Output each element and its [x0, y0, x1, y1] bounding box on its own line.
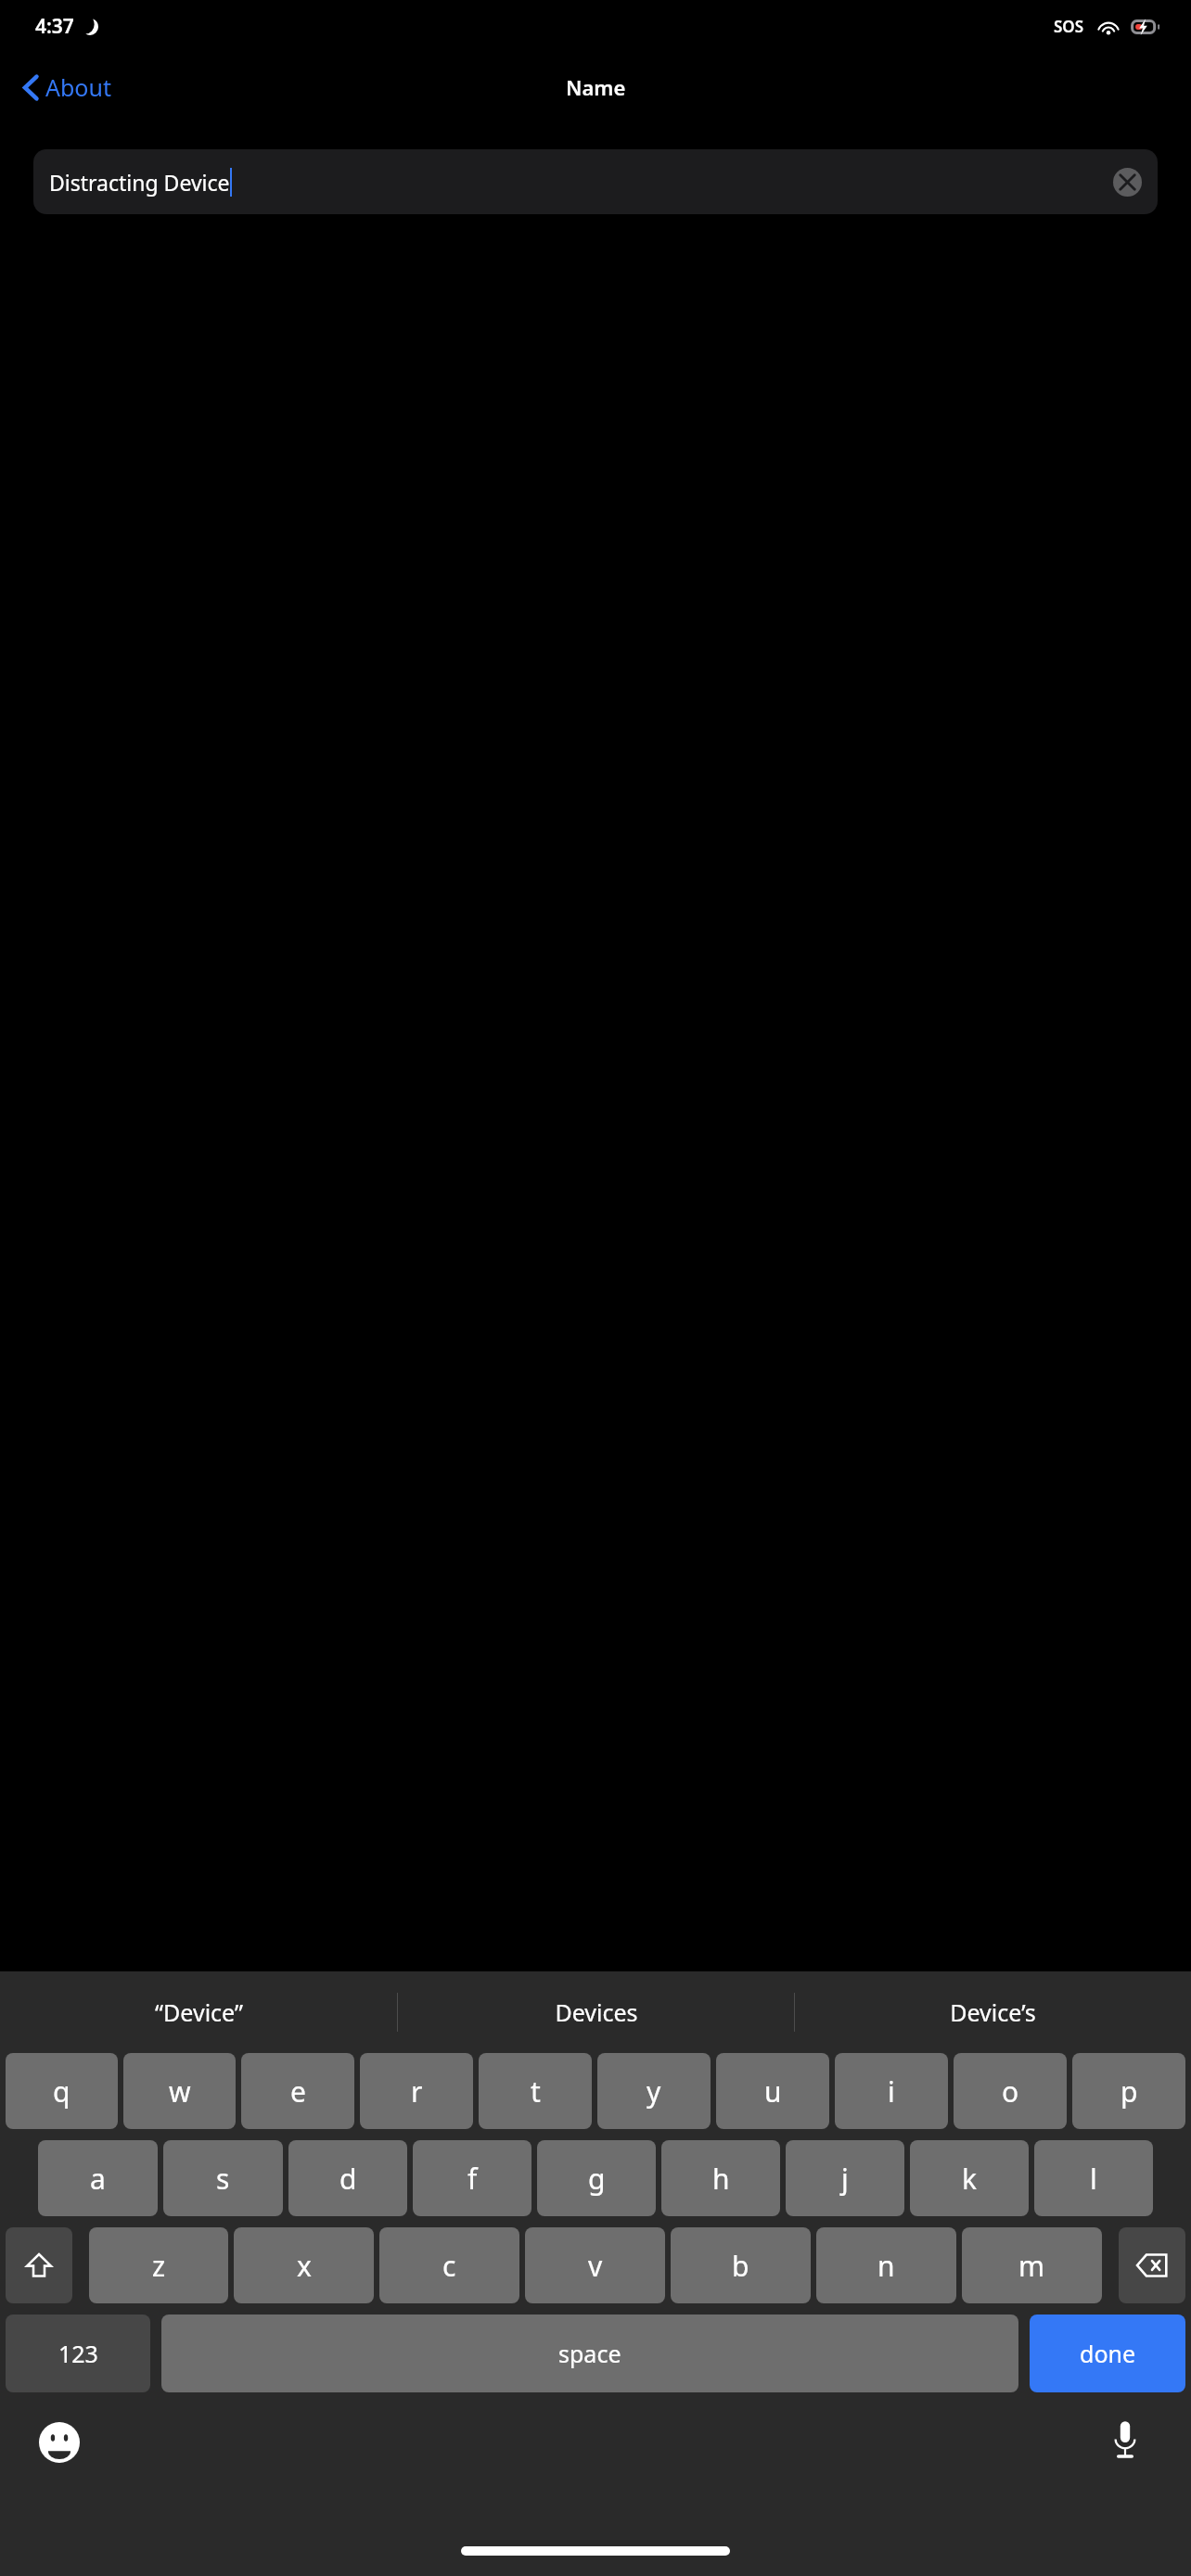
staticText: i: [888, 2072, 895, 2111]
button[interactable]: Dictation: [1104, 2418, 1146, 2461]
button[interactable]: v: [525, 2227, 665, 2303]
button[interactable]: w: [123, 2053, 236, 2129]
button[interactable]: space: [161, 2315, 1018, 2392]
staticText: Distracting Device: [49, 168, 230, 197]
staticText: v: [588, 2247, 603, 2285]
staticText: 4:37: [35, 13, 74, 40]
staticText: About: [45, 71, 111, 103]
button[interactable]: o: [954, 2053, 1067, 2129]
staticText: h: [712, 2160, 730, 2198]
button[interactable]: x: [234, 2227, 374, 2303]
button[interactable]: Devices: [398, 1971, 794, 2053]
staticText: n: [877, 2247, 895, 2285]
staticText: b: [732, 2247, 749, 2285]
staticText: s: [216, 2160, 230, 2198]
staticText: f: [467, 2160, 478, 2198]
button[interactable]: h: [661, 2140, 780, 2216]
staticText: d: [339, 2160, 357, 2198]
staticText: 123: [58, 2338, 98, 2369]
staticText: u: [764, 2072, 782, 2111]
staticText: g: [588, 2160, 606, 2198]
staticText: t: [531, 2072, 541, 2111]
button[interactable]: d: [288, 2140, 407, 2216]
button[interactable]: a: [38, 2140, 158, 2216]
staticText: l: [1090, 2160, 1097, 2198]
staticText: “Device”: [155, 1996, 243, 2028]
staticText: e: [290, 2072, 306, 2111]
button[interactable]: j: [786, 2140, 904, 2216]
button[interactable]: done: [1030, 2315, 1185, 2392]
staticText: x: [297, 2247, 312, 2285]
staticText: k: [962, 2160, 978, 2198]
staticText: Devices: [555, 1996, 638, 2028]
staticText: o: [1002, 2072, 1019, 2111]
button[interactable]: p: [1072, 2053, 1185, 2129]
staticText: Name: [566, 73, 626, 101]
button[interactable]: e: [241, 2053, 354, 2129]
button[interactable]: y: [597, 2053, 711, 2129]
staticText: c: [442, 2247, 456, 2285]
button[interactable]: z: [89, 2227, 228, 2303]
button[interactable]: q: [6, 2053, 118, 2129]
staticText: Device’s: [950, 1996, 1036, 2028]
button[interactable]: l: [1034, 2140, 1153, 2216]
staticText: done: [1080, 2338, 1136, 2369]
button[interactable]: c: [379, 2227, 519, 2303]
button[interactable]: Emoji keyboard: [37, 2420, 82, 2465]
staticText: a: [90, 2160, 106, 2198]
button[interactable]: f: [413, 2140, 531, 2216]
button[interactable]: n: [816, 2227, 956, 2303]
button[interactable]: g: [537, 2140, 656, 2216]
button[interactable]: r: [360, 2053, 473, 2129]
staticText: p: [1121, 2072, 1138, 2111]
button[interactable]: s: [163, 2140, 283, 2216]
button[interactable]: b: [671, 2227, 811, 2303]
staticText: space: [558, 2338, 621, 2369]
button[interactable]: Clear text: [1113, 168, 1142, 197]
button[interactable]: About: [0, 62, 128, 112]
staticText: m: [1018, 2247, 1045, 2285]
button[interactable]: m: [962, 2227, 1102, 2303]
staticText: y: [647, 2072, 661, 2111]
button[interactable]: t: [479, 2053, 592, 2129]
button[interactable]: “Device”: [0, 1971, 397, 2053]
button[interactable]: Shift: [6, 2227, 72, 2303]
staticText: SOS: [1054, 16, 1084, 37]
button[interactable]: i: [835, 2053, 948, 2129]
staticText: w: [169, 2072, 191, 2111]
staticText: z: [152, 2247, 166, 2285]
staticText: q: [53, 2072, 70, 2111]
button[interactable]: Distracting Device: [33, 149, 1158, 214]
button[interactable]: 123: [6, 2315, 150, 2392]
button[interactable]: u: [716, 2053, 829, 2129]
button[interactable]: k: [910, 2140, 1029, 2216]
button[interactable]: Device’s: [795, 1971, 1191, 2053]
staticText: j: [841, 2160, 849, 2198]
button[interactable]: Backspace: [1119, 2227, 1185, 2303]
staticText: r: [411, 2072, 423, 2111]
